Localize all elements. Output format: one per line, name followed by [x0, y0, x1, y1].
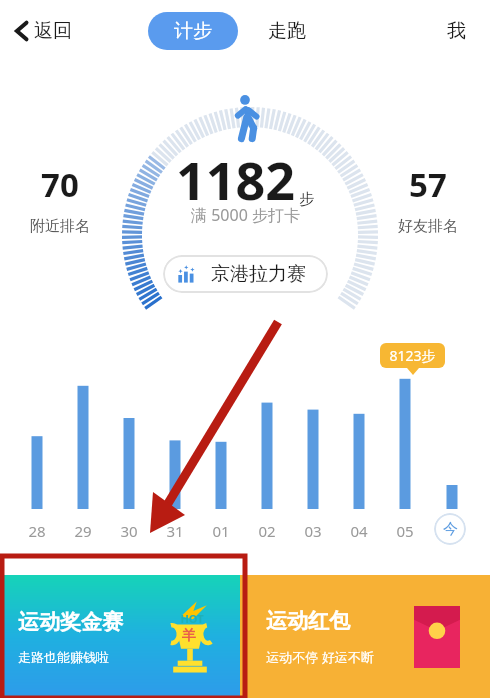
staticText: 附近排名 — [30, 217, 90, 236]
staticText: 05 — [396, 521, 414, 541]
staticText: 走路也能赚钱啦 — [18, 649, 109, 665]
staticText: 返回 — [34, 19, 72, 43]
staticText: 1182 — [176, 144, 295, 215]
staticText: 今 — [443, 520, 458, 539]
staticText: 运动红包 — [266, 608, 350, 634]
staticText: 30 — [120, 521, 138, 541]
staticText: 满 5000 步打卡 — [191, 204, 300, 226]
staticText: 走跑 — [268, 19, 306, 43]
staticText: 03 — [304, 521, 322, 541]
button[interactable]: 70 — [30, 162, 90, 236]
button[interactable]: 走跑 — [262, 12, 312, 50]
staticText: 运动奖金赛 — [18, 609, 123, 635]
staticText: 计步 — [174, 19, 212, 43]
button[interactable]: 今天 — [434, 513, 466, 545]
staticText: 京港拉力赛 — [211, 262, 306, 286]
staticText: 02 — [258, 521, 276, 541]
staticText: 运动不停 好运不断 — [266, 648, 374, 666]
staticText: HOT — [180, 611, 204, 626]
button[interactable]: 计步 — [148, 12, 238, 50]
staticText: 28 — [28, 521, 46, 541]
staticText: 步 — [299, 190, 314, 209]
button[interactable]: 运动奖金赛 — [0, 575, 240, 698]
staticText: 8123步 — [389, 346, 436, 365]
staticText: 我 — [447, 19, 466, 43]
button[interactable]: 运动红包 — [240, 575, 490, 698]
staticText: 29 — [74, 521, 92, 541]
staticText: 01 — [212, 521, 230, 541]
button[interactable]: 京港拉力赛 — [163, 255, 328, 293]
button[interactable]: 57 — [398, 162, 458, 236]
staticText: 羊 — [182, 627, 196, 645]
staticText: 31 — [166, 521, 184, 541]
staticText: 04 — [350, 521, 368, 541]
button[interactable]: 我 — [441, 13, 472, 49]
staticText: 70 — [41, 162, 79, 207]
button[interactable]: 返回 — [8, 13, 78, 49]
staticText: 57 — [409, 162, 447, 207]
staticText: 好友排名 — [398, 217, 458, 236]
